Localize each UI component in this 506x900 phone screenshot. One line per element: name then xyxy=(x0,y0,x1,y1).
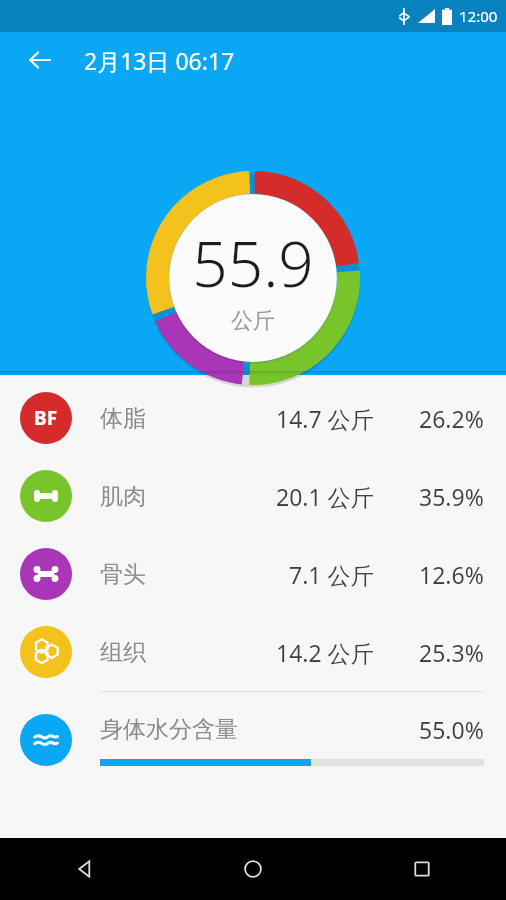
staticText: 身体水分含量 xyxy=(100,715,238,744)
button[interactable]: Back xyxy=(0,838,168,900)
staticText: 25.3% xyxy=(419,637,484,668)
staticText: 14.2 公斤 xyxy=(276,637,374,668)
staticText: 12:00 xyxy=(459,6,498,26)
staticText: 肌肉 xyxy=(100,482,146,511)
button[interactable]: Recent apps xyxy=(337,838,506,900)
staticText: 体脂 xyxy=(100,404,146,433)
staticText: 55.0% xyxy=(419,714,484,745)
staticText: 35.9% xyxy=(419,481,484,512)
button[interactable]: BF xyxy=(0,379,506,457)
button[interactable]: Home xyxy=(168,838,337,900)
button[interactable]: 肌肉 xyxy=(0,457,506,535)
button[interactable]: 组织 xyxy=(0,613,506,691)
staticText: 组织 xyxy=(100,638,146,667)
staticText: 55.9 xyxy=(192,221,314,305)
staticText: 20.1 公斤 xyxy=(276,481,374,512)
staticText: 2月13日 06:17 xyxy=(84,45,235,76)
button[interactable]: 身体水分含量 xyxy=(0,692,506,787)
staticText: 公斤 xyxy=(231,307,275,335)
staticText: BF xyxy=(34,405,58,431)
staticText: 14.7 公斤 xyxy=(276,403,374,434)
staticText: 26.2% xyxy=(419,403,484,434)
staticText: 12.6% xyxy=(419,559,484,590)
staticText: 7.1 公斤 xyxy=(289,559,374,590)
button[interactable]: 骨头 xyxy=(0,535,506,613)
button[interactable]: Back xyxy=(16,36,64,84)
staticText: 骨头 xyxy=(100,560,146,589)
